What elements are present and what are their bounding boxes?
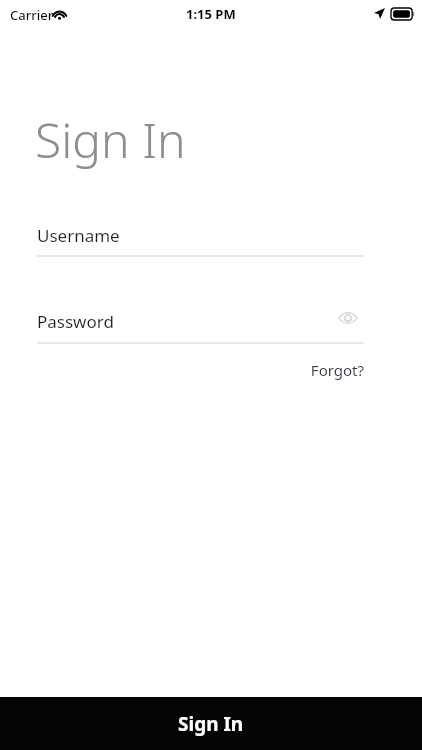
staticText: Forgot? xyxy=(310,360,364,380)
button[interactable]: Show password xyxy=(334,304,362,332)
staticText: Username xyxy=(37,224,120,247)
staticText: 1:15 PM xyxy=(186,5,236,23)
staticText: Sign In xyxy=(178,711,244,737)
button[interactable]: Sign In xyxy=(0,697,422,750)
staticText: Carrier xyxy=(10,6,54,24)
button[interactable]: Password xyxy=(37,308,364,344)
staticText: Password xyxy=(37,310,114,333)
button[interactable]: Forgot? xyxy=(292,358,364,382)
button[interactable]: Username xyxy=(37,222,364,257)
staticText: Sign In xyxy=(35,107,186,172)
